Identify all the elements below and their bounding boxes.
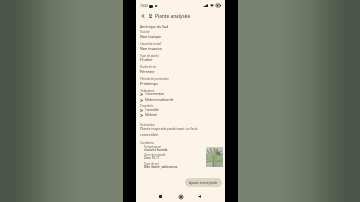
staticText: Ajouter à mon jardin	[189, 181, 218, 185]
staticText: Pérenne	[140, 69, 155, 74]
staticText: Médicinal	[145, 113, 157, 117]
staticText: comestible.	[140, 132, 159, 137]
button[interactable]: Ajouter à mon jardin	[185, 178, 222, 187]
staticText: Comestible	[145, 108, 159, 112]
staticText: Amérique du Sud	[140, 24, 168, 29]
staticText: Fruitier	[140, 57, 153, 62]
staticText: Température	[144, 145, 161, 149]
staticText: Durée de vie	[140, 65, 157, 69]
button[interactable]: Retour	[138, 11, 147, 20]
staticText: Période de production	[140, 77, 169, 81]
staticText: Type de sol	[144, 162, 159, 166]
staticText: Plante tropicale produisant un fruit	[140, 126, 198, 131]
staticText: Médecine traditionnelle	[145, 98, 174, 102]
staticText: Caractère invasif	[140, 42, 162, 46]
button[interactable]: Accueil	[176, 192, 185, 201]
staticText: Conditions	[140, 141, 154, 145]
staticText: Toxicité	[140, 30, 150, 34]
staticText: Description	[140, 123, 155, 127]
staticText: Zone 10-11	[144, 156, 160, 160]
staticText: Bien drainé, sablonneux	[144, 165, 178, 169]
staticText: Consommation	[145, 92, 164, 96]
staticText: Zone de rusticité	[144, 153, 166, 157]
button[interactable]: Aperçu des applications	[156, 192, 165, 201]
staticText: Propriétés	[140, 104, 154, 108]
staticText: chaud et humide	[144, 148, 168, 152]
staticText: Non invasive	[140, 46, 163, 51]
staticText: Printemps	[140, 81, 158, 86]
staticText: 10:42	[140, 4, 148, 8]
staticText: Plante analysée	[155, 13, 191, 19]
staticText: Non toxique	[140, 34, 162, 39]
staticText: Type de plante	[140, 54, 159, 58]
staticText: Utilisations	[140, 89, 155, 93]
button[interactable]: Retour	[195, 192, 204, 201]
